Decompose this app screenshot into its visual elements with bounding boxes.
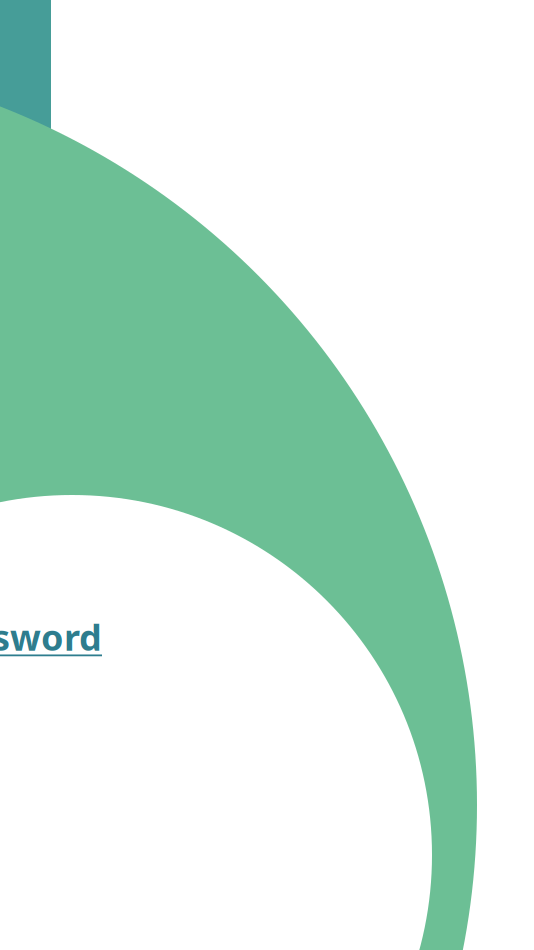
staticText: Forget Password (0, 613, 102, 661)
button[interactable]: Forget Password (0, 613, 104, 661)
